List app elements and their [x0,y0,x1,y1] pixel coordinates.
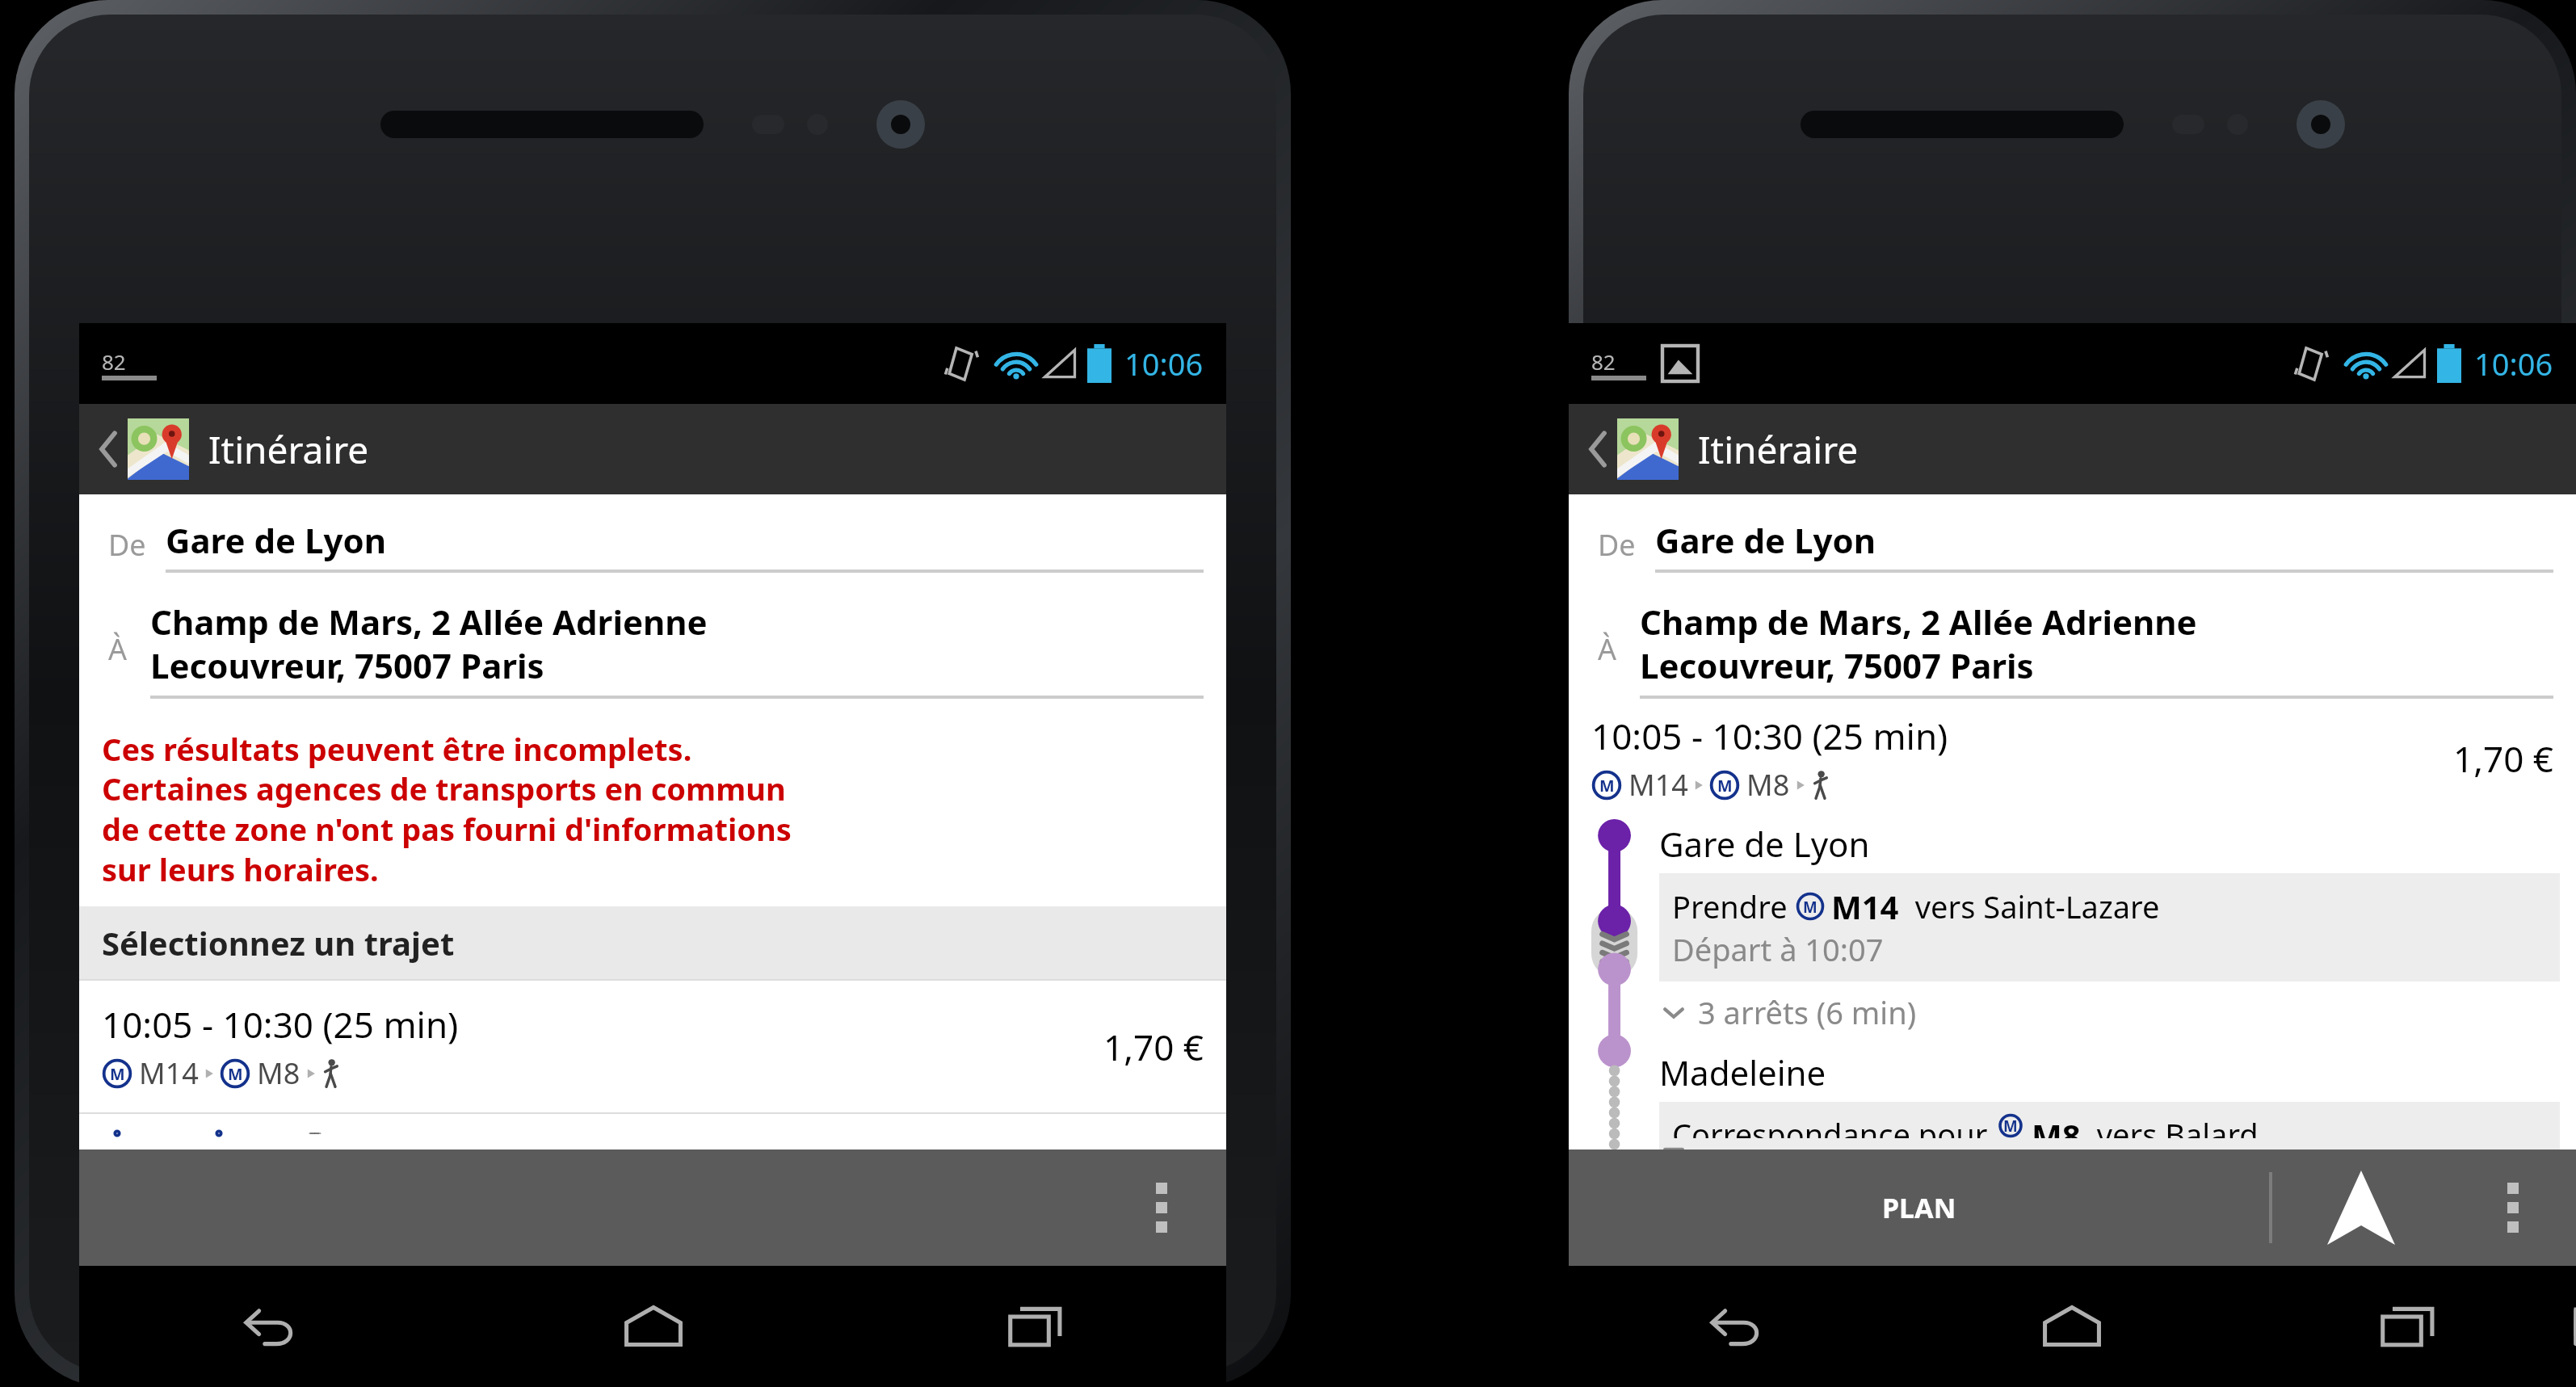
staticText: Sélectionnez un trajet [102,921,455,965]
button[interactable]: Prendre [1659,873,2560,981]
button[interactable]: De [79,494,1226,573]
staticText: 82 [102,347,126,376]
staticText: M [2003,1116,2018,1136]
button[interactable]: Navigation [2272,1150,2450,1266]
staticText: Ces résultats peuvent être incomplets. C… [102,728,792,890]
staticText: Champ de Mars, 2 Allée Adrienne Lecouvre… [1640,599,2197,689]
staticText: M14 [139,1053,199,1093]
staticText: M [228,1063,243,1085]
button[interactable]: Home [462,1266,844,1387]
staticText: Gare de Lyon [1655,517,1876,563]
staticText: 82 [1591,347,1616,376]
staticText: Gare de Lyon [166,517,387,563]
staticText: Prendre [1672,885,1796,927]
button[interactable]: Home [1904,1266,2240,1387]
staticText: M [1599,775,1615,796]
button[interactable]: Back [79,404,1226,494]
staticText: PLAN [1882,1189,1956,1226]
staticText: Correspondance pour [1672,1113,1996,1138]
staticText: M8 [1746,765,1790,805]
staticText: 3 arrêts (6 min) [1698,991,1917,1033]
staticText: vers Saint-Lazare [1899,885,2160,927]
staticText: Itinéraire [208,424,369,475]
button[interactable]: Back [1569,404,2576,494]
staticText: M14 [1831,885,1899,928]
staticText: M8 [2032,1113,2081,1138]
staticText: 10:05 - 10:30 (25 min) [1591,712,1948,760]
staticText: 1,70 € [2453,734,2553,783]
button[interactable]: Back [79,1266,462,1387]
staticText: 1,70 € [1103,1023,1204,1071]
button[interactable]: More options [2450,1150,2576,1266]
staticText: Gare de Lyon [1659,821,1870,867]
staticText: À [1598,629,1617,669]
staticText: M14 [1628,765,1688,805]
staticText: 10:05 - 10:30 (25 min) [102,1000,459,1049]
staticText: De [1598,525,1636,565]
staticText: M [1717,775,1733,796]
button[interactable]: Correspondance pour [1659,1102,2560,1150]
staticText: Départ à 10:07 [1672,928,1884,970]
staticText: 10:06 [1124,343,1204,385]
staticText: De [108,525,146,565]
other: Back [95,428,121,470]
button[interactable]: À [1569,573,2576,699]
staticText: M [110,1063,125,1085]
button[interactable]: Recent apps [2240,1266,2576,1387]
staticText: M [1803,897,1817,917]
button[interactable]: 3 arrêts (6 min) [1659,991,1917,1033]
button[interactable]: De [1569,494,2576,573]
button[interactable]: 10:05 - 10:33 (28 min) [79,1112,1226,1150]
button[interactable]: Back [1569,1266,1904,1387]
staticText: Champ de Mars, 2 Allée Adrienne Lecouvre… [150,599,708,689]
staticText: M8 [257,1053,300,1093]
staticText: Itinéraire [1698,424,1859,475]
staticText: À [108,629,128,669]
staticText: Madeleine [1659,1049,1826,1095]
button[interactable]: Recent apps [844,1266,1226,1387]
button[interactable]: More options [1129,1159,1194,1256]
button[interactable]: 10:05 - 10:30 (25 min) [79,979,1226,1112]
button[interactable]: PLAN [1569,1150,2269,1266]
other: Back [1585,428,1611,470]
staticText: vers Balard [2081,1113,2259,1138]
button[interactable]: À [79,573,1226,699]
staticText: 10:06 [2474,343,2553,385]
